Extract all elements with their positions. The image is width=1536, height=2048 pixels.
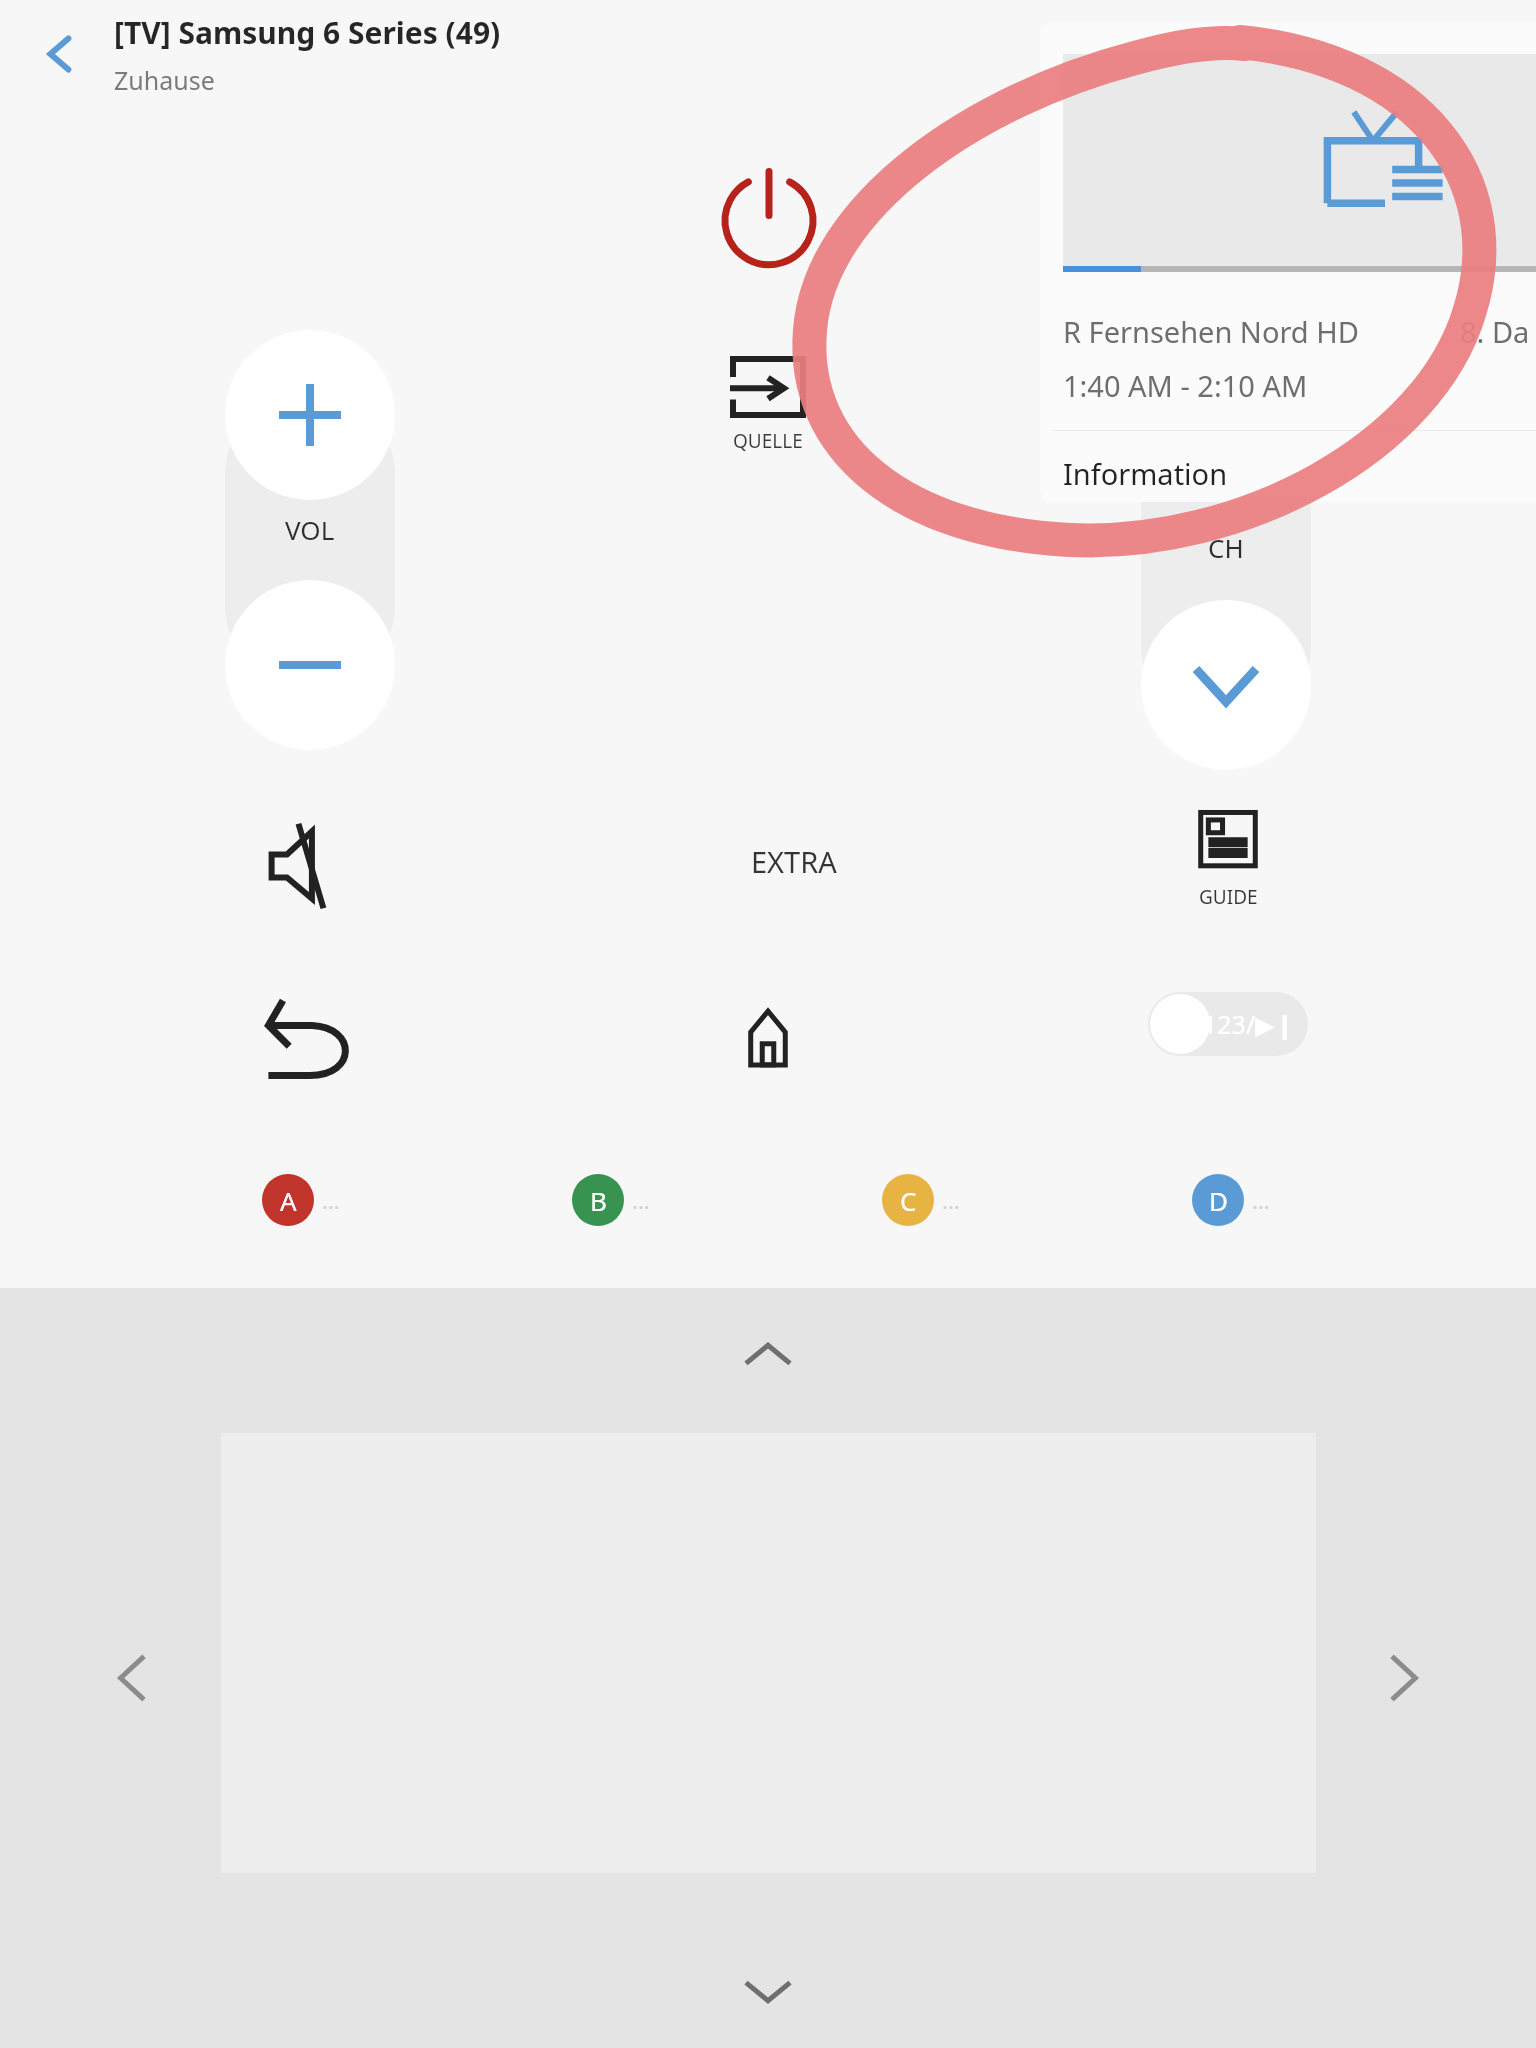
staticText: D bbox=[1209, 1183, 1228, 1218]
staticText: ... bbox=[942, 1185, 960, 1215]
staticText: 123/▶❙ bbox=[1203, 1007, 1296, 1041]
staticText: ... bbox=[1252, 1185, 1270, 1215]
staticText: VOL bbox=[285, 512, 335, 547]
staticText: ... bbox=[632, 1185, 650, 1215]
button[interactable]: Return bbox=[258, 986, 362, 1090]
staticText: Information bbox=[1063, 454, 1228, 493]
button[interactable]: Collapse bbox=[713, 1956, 823, 2026]
button[interactable]: D bbox=[1192, 1168, 1312, 1232]
staticText: GUIDE bbox=[1199, 884, 1258, 910]
staticText: A bbox=[280, 1183, 297, 1218]
staticText: QUELLE bbox=[733, 428, 803, 454]
staticText: 8. Da bbox=[1460, 312, 1530, 351]
button[interactable]: QUELLE bbox=[692, 356, 844, 454]
staticText: R Fernsehen Nord HD bbox=[1063, 312, 1359, 351]
staticText: ... bbox=[322, 1185, 340, 1215]
button[interactable]: Switch to number pad bbox=[1148, 992, 1308, 1056]
button[interactable]: Channel down bbox=[1141, 600, 1311, 770]
button[interactable]: Volume up bbox=[225, 330, 395, 500]
staticText: [TV] Samsung 6 Series (49) bbox=[114, 12, 501, 53]
button[interactable]: A bbox=[262, 1168, 382, 1232]
staticText: EXTRA bbox=[751, 842, 837, 881]
button[interactable]: Previous bbox=[90, 1633, 180, 1723]
button[interactable]: Mute bbox=[262, 818, 358, 914]
button[interactable]: Power bbox=[714, 158, 824, 268]
staticText: C bbox=[900, 1183, 917, 1218]
button[interactable]: EXTRA bbox=[688, 832, 900, 890]
staticText: CH bbox=[1208, 530, 1244, 565]
button[interactable]: R Fernsehen Nord HD bbox=[1040, 22, 1536, 502]
staticText: Zuhause bbox=[114, 63, 215, 97]
button[interactable]: B bbox=[572, 1168, 692, 1232]
button[interactable]: C bbox=[882, 1168, 1002, 1232]
staticText: 1:40 AM - 2:10 AM bbox=[1063, 366, 1308, 405]
staticText: B bbox=[590, 1183, 607, 1218]
button[interactable]: Back bbox=[30, 24, 90, 84]
button[interactable]: Home bbox=[720, 990, 816, 1086]
button[interactable]: Volume down bbox=[225, 580, 395, 750]
button[interactable]: GUIDE bbox=[1165, 810, 1291, 910]
button[interactable]: Next bbox=[1356, 1633, 1446, 1723]
button[interactable]: Expand bbox=[713, 1320, 823, 1390]
